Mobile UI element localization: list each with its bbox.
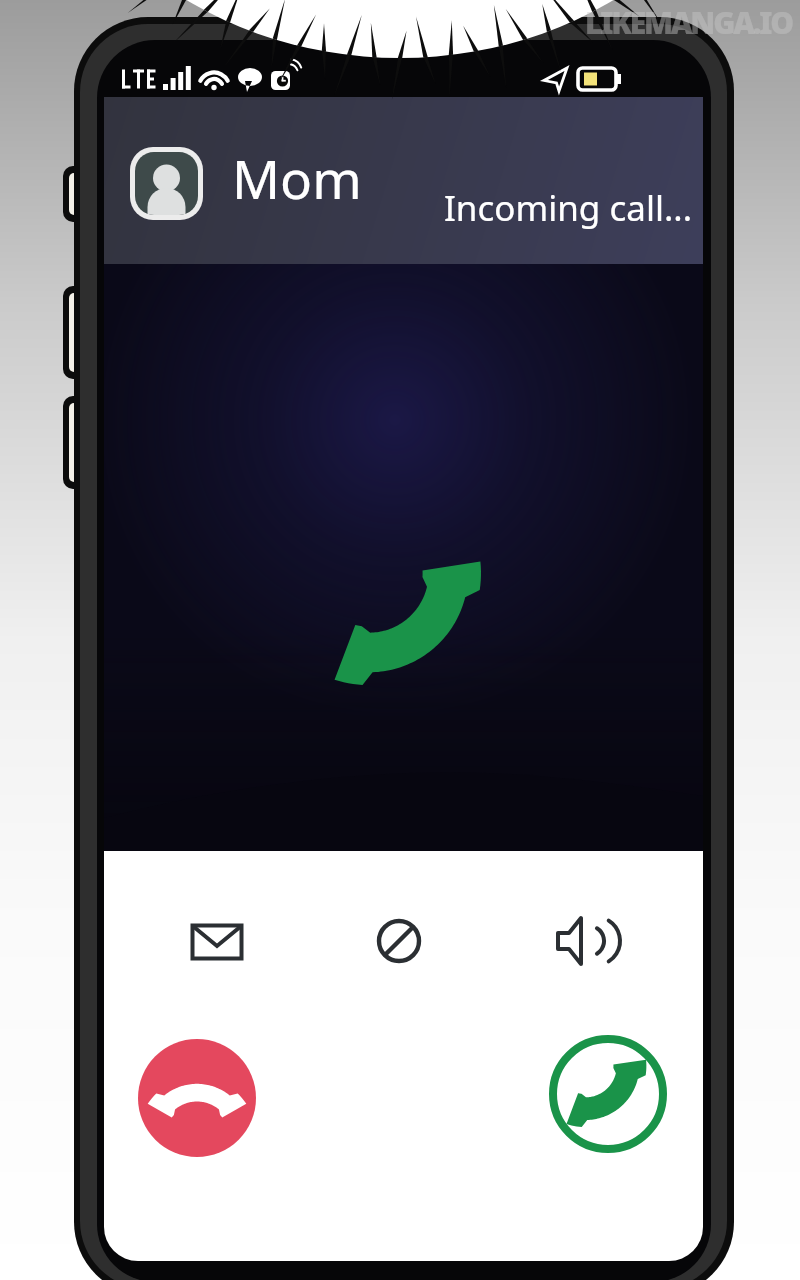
- staticText: Mom: [232, 142, 362, 214]
- button[interactable]: Speaker: [536, 897, 624, 985]
- button[interactable]: Send message: [173, 898, 261, 986]
- button[interactable]: Decline call: [138, 1039, 256, 1157]
- button[interactable]: Accept call: [549, 1035, 667, 1153]
- staticText: LIKEMANGA.IO: [585, 2, 792, 43]
- button[interactable]: Block caller: [355, 897, 443, 985]
- staticText: Incoming call...: [444, 184, 693, 232]
- button[interactable]: [104, 97, 703, 264]
